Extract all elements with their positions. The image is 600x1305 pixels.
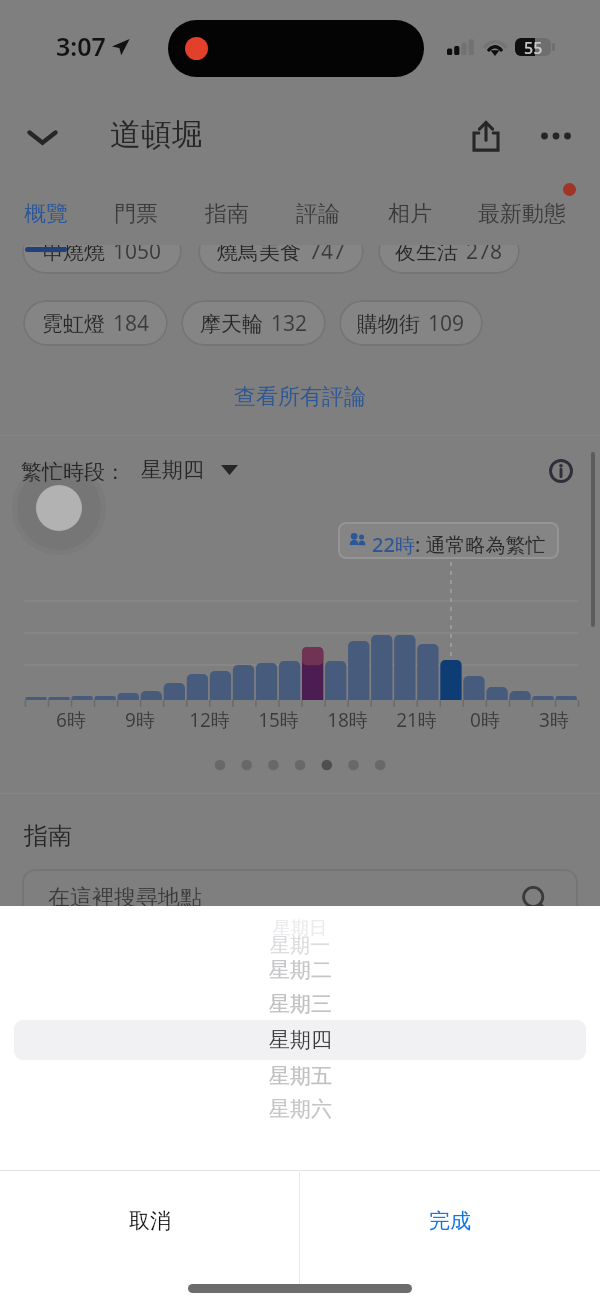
button[interactable]: Share [462, 112, 510, 160]
staticText: 相片 [388, 200, 432, 228]
staticText: 星期四 [141, 457, 204, 483]
button[interactable]: 星期三 [0, 984, 600, 1024]
button[interactable]: Collapse [19, 113, 65, 159]
staticText: 查看所有評論 [234, 383, 366, 411]
staticText: 購物街 [357, 311, 420, 337]
staticText: 0時 [470, 707, 500, 731]
button[interactable]: 夜生活 [378, 228, 520, 274]
staticText: 夜生活 [395, 239, 458, 265]
staticText: 184 [113, 309, 150, 338]
staticText: 109 [428, 309, 465, 338]
button[interactable]: 概覽 [24, 193, 68, 235]
staticText: 星期六 [269, 1096, 332, 1122]
staticText: 霓虹燈 [42, 311, 105, 337]
staticText: 完成 [429, 1208, 471, 1234]
staticText: 摩天輪 [200, 311, 263, 337]
staticText: 評論 [296, 200, 340, 228]
button[interactable]: 完成 [300, 1172, 600, 1269]
button[interactable]: 指南 [205, 193, 249, 235]
button[interactable]: 星期四 [0, 1020, 600, 1060]
staticText: 6時 [56, 707, 86, 731]
staticText: 道頓堀 [110, 115, 203, 154]
button[interactable]: 購物街 [339, 300, 483, 346]
staticText: 12時 [189, 707, 230, 731]
button[interactable]: 串燒燒 [22, 228, 182, 274]
button[interactable]: 星期四 [141, 456, 238, 484]
button[interactable]: 星期一 [0, 925, 600, 965]
button[interactable]: 星期六 [0, 1089, 600, 1129]
staticText: 概覽 [24, 200, 68, 228]
button[interactable]: Information [538, 448, 584, 494]
staticText: 星期三 [269, 991, 332, 1017]
staticText: 15時 [258, 707, 299, 731]
staticText: 21時 [396, 707, 437, 731]
staticText: 9時 [125, 707, 155, 731]
button[interactable]: 星期日 [0, 908, 600, 948]
button[interactable]: 門票 [114, 193, 158, 235]
staticText: 取消 [129, 1208, 171, 1234]
staticText: 指南 [24, 821, 72, 851]
button[interactable]: 最新動態 [478, 193, 566, 235]
button[interactable]: 摩天輪 [181, 300, 326, 346]
staticText: 22時 [372, 531, 415, 558]
button[interactable]: 霓虹燈 [23, 300, 168, 346]
staticText: 最新動態 [478, 200, 566, 228]
staticText: 星期五 [269, 1063, 332, 1089]
button[interactable]: 在這裡搜尋地點 [22, 869, 578, 931]
staticText: 繁忙時段： [21, 459, 126, 485]
staticText: 747 [309, 237, 346, 266]
staticText: 在這裡搜尋地點 [48, 884, 202, 912]
staticText: 星期一 [270, 933, 330, 958]
button[interactable]: 評論 [296, 193, 340, 235]
staticText: 星期四 [269, 1027, 332, 1053]
staticText: 串燒燒 [42, 239, 105, 265]
staticText: 門票 [114, 200, 158, 228]
staticText: 星期二 [269, 957, 332, 983]
button[interactable]: 燒鳥美食 [198, 228, 364, 274]
button[interactable]: More options [532, 112, 580, 160]
button[interactable]: 取消 [0, 1172, 300, 1269]
staticText: 3:07 [56, 29, 106, 63]
button[interactable]: 星期二 [0, 950, 600, 990]
staticText: 18時 [327, 707, 368, 731]
button[interactable]: 查看所有評論 [210, 376, 390, 418]
button[interactable]: 相片 [388, 193, 432, 235]
staticText: 278 [466, 237, 503, 266]
staticText: 55 [524, 38, 543, 55]
staticText: : 通常略為繁忙 [415, 531, 546, 558]
staticText: 132 [271, 309, 308, 338]
staticText: 燒鳥美食 [217, 239, 301, 265]
staticText: 1050 [113, 237, 162, 266]
staticText: 指南 [205, 200, 249, 228]
staticText: 星期日 [273, 917, 327, 940]
button[interactable]: 星期五 [0, 1056, 600, 1096]
staticText: 3時 [539, 707, 569, 731]
